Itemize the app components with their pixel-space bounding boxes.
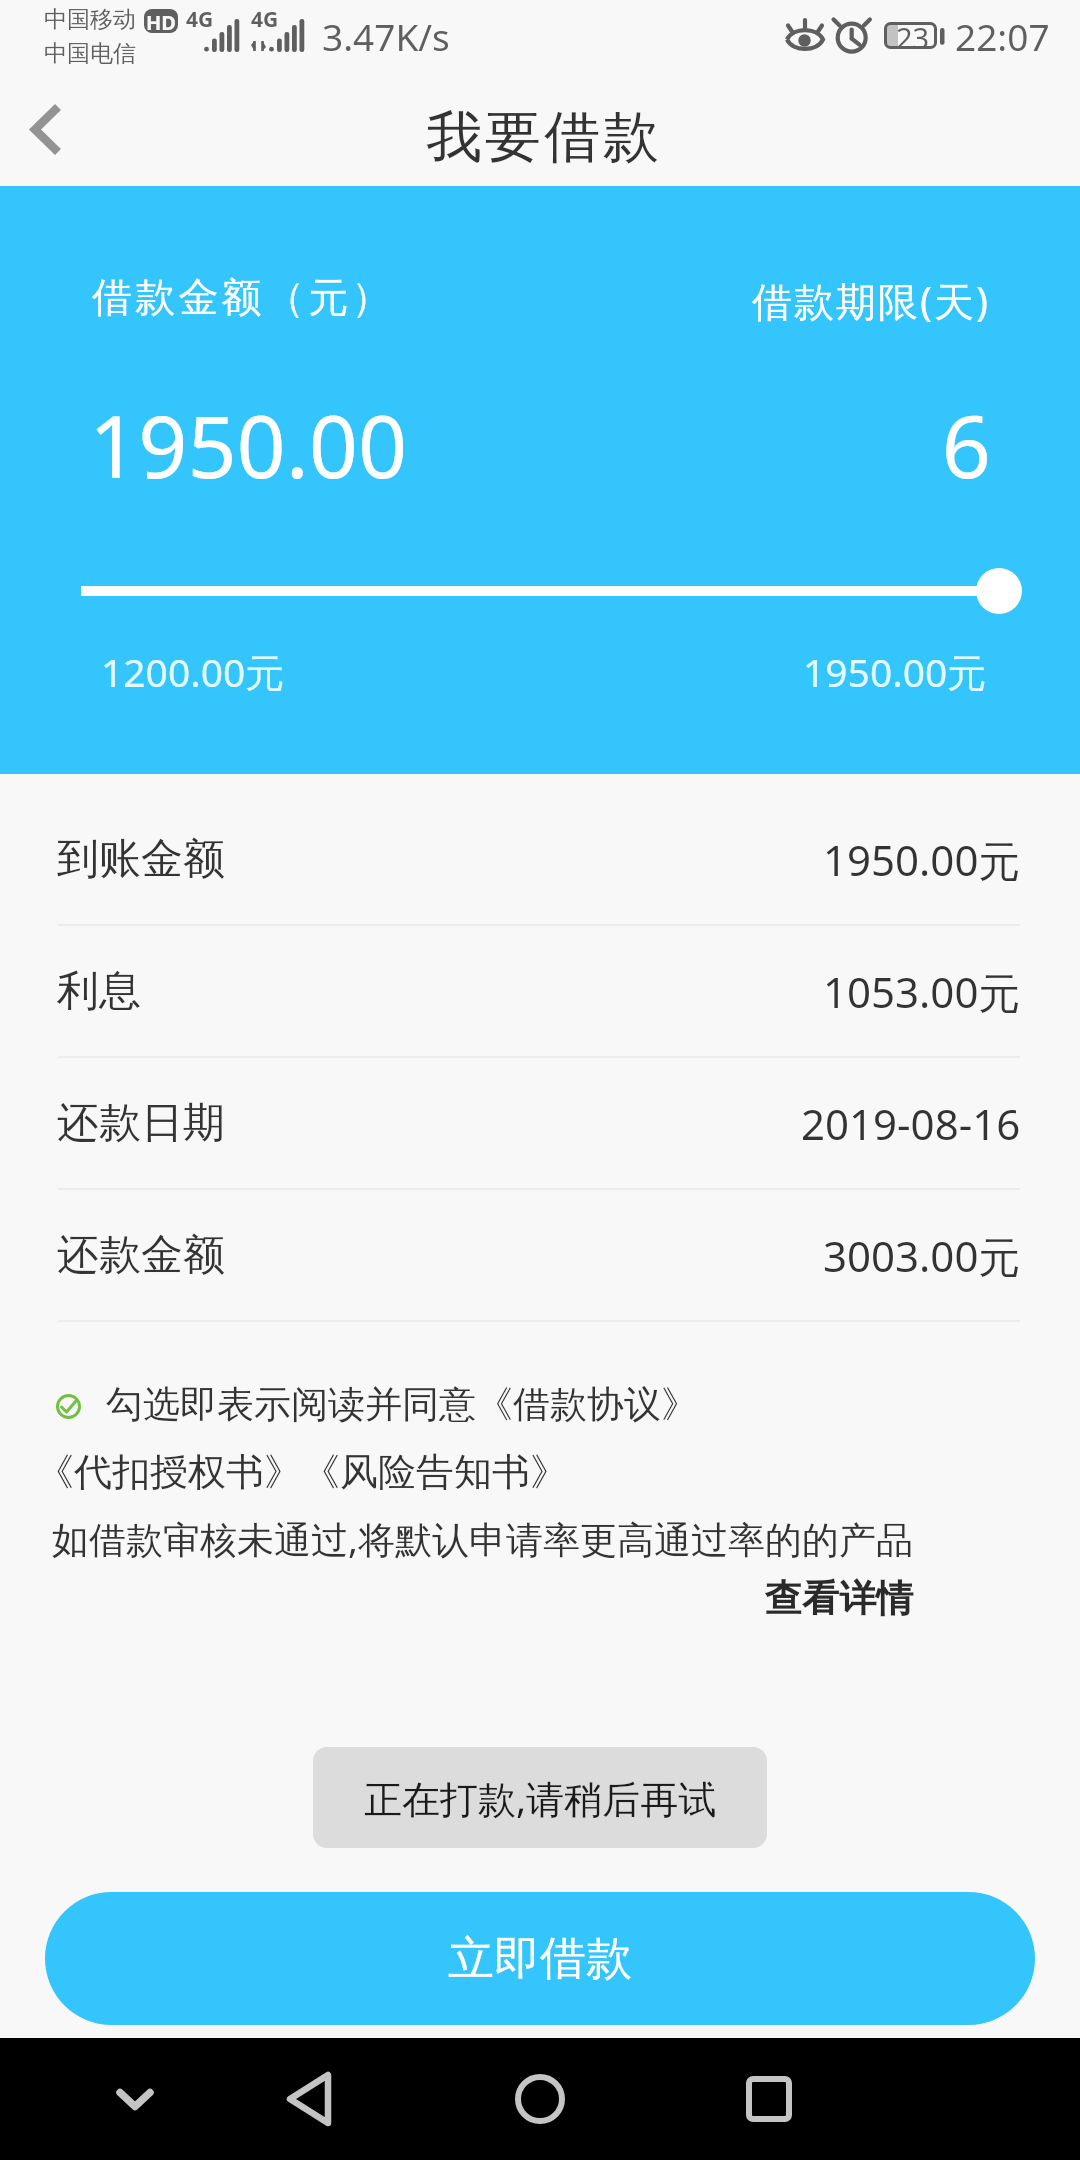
- button[interactable]: Recents: [719, 2049, 819, 2149]
- staticText: 正在打款,请稍后再试: [364, 1772, 717, 1824]
- staticText: 还款金额: [57, 1229, 225, 1282]
- staticText: 借款金额（元）: [92, 272, 395, 322]
- staticText: HD: [146, 9, 176, 33]
- staticText: 6: [0, 386, 991, 503]
- button[interactable]: Agree to the loan agreement: [44, 1374, 94, 1440]
- staticText: 1950.00元: [823, 831, 1021, 888]
- button[interactable]: 还款日期: [0, 1058, 1080, 1190]
- staticText: 1950.00元: [803, 645, 987, 698]
- staticText: 22:07: [955, 11, 1050, 61]
- button[interactable]: Back: [0, 86, 92, 174]
- staticText: 23: [896, 18, 930, 57]
- staticText: 1950.00: [89, 386, 408, 503]
- staticText: 还款日期: [57, 1097, 225, 1150]
- button[interactable]: Loan amount slider: [60, 551, 1020, 631]
- staticText: 4G: [251, 5, 279, 34]
- button[interactable]: Home: [490, 2049, 590, 2149]
- staticText: 勾选即表示阅读并同意《借款协议》: [106, 1381, 686, 1428]
- button[interactable]: Back: [260, 2049, 360, 2149]
- staticText: 查看详情: [765, 1575, 913, 1622]
- staticText: 1053.00元: [823, 963, 1021, 1020]
- staticText: 借款期限(天): [752, 273, 990, 328]
- staticText: 3.47K/s: [322, 11, 450, 61]
- button[interactable]: Hide: [85, 2049, 185, 2149]
- button[interactable]: 勾选即表示阅读并同意《借款协议》: [100, 1374, 680, 1436]
- staticText: 我要借款: [4, 102, 1080, 173]
- staticText: 到账金额: [57, 833, 225, 886]
- staticText: 中国电信: [44, 39, 136, 68]
- button[interactable]: 还款金额: [0, 1190, 1080, 1322]
- button[interactable]: 到账金额: [0, 794, 1080, 926]
- staticText: 4G: [186, 5, 214, 34]
- button[interactable]: 查看详情: [747, 1562, 930, 1634]
- button[interactable]: 立即借款: [45, 1892, 1035, 2025]
- staticText: 2019-08-16: [801, 1095, 1021, 1152]
- staticText: 利息: [57, 965, 141, 1018]
- staticText: 3003.00元: [823, 1227, 1021, 1284]
- staticText: 立即借款: [448, 1930, 632, 1988]
- button[interactable]: 利息: [0, 926, 1080, 1058]
- staticText: 《代扣授权书》《风险告知书》: [36, 1448, 568, 1496]
- staticText: 1200.00元: [101, 645, 285, 698]
- staticText: 中国移动: [44, 5, 136, 34]
- staticText: 如借款审核未通过,将默认申请率更高通过率的的产品: [52, 1513, 913, 1564]
